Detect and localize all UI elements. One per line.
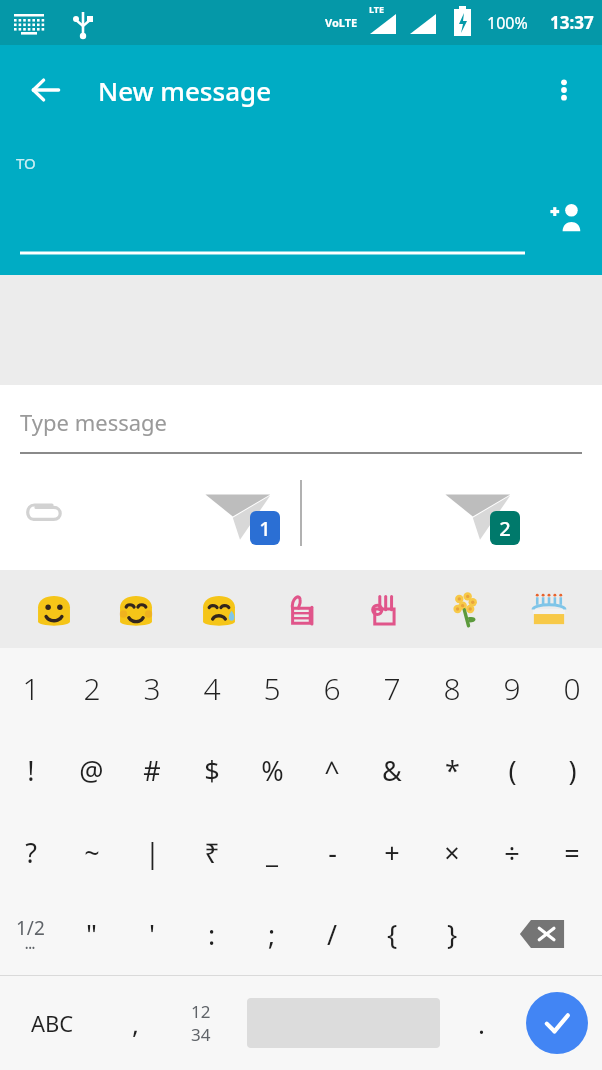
- button[interactable]: -: [302, 811, 362, 893]
- button[interactable]: ×: [422, 811, 482, 893]
- button[interactable]: 4: [182, 648, 242, 729]
- staticText: 1: [259, 515, 271, 542]
- staticText: 6: [323, 668, 341, 709]
- button[interactable]: $: [182, 729, 242, 811]
- staticText: •••: [25, 941, 36, 953]
- staticText: ~: [84, 834, 100, 871]
- button[interactable]: :: [182, 893, 242, 975]
- button[interactable]: Emoji 1: [25, 580, 83, 638]
- button[interactable]: ABC: [0, 976, 105, 1070]
- button[interactable]: ': [122, 893, 182, 975]
- button[interactable]: 5: [242, 648, 302, 729]
- button[interactable]: Send with SIM 2: [432, 473, 528, 553]
- button[interactable]: *: [422, 729, 482, 811]
- staticText: |: [145, 834, 160, 871]
- button[interactable]: Emoji 6: [437, 580, 495, 638]
- staticText: 8: [443, 668, 461, 709]
- button[interactable]: Send with SIM 1: [192, 473, 288, 553]
- staticText: ABC: [31, 1008, 74, 1038]
- button[interactable]: Back: [18, 62, 74, 118]
- staticText: VoLTE: [325, 15, 358, 30]
- button[interactable]: Emoji 2: [107, 580, 165, 638]
- button[interactable]: ": [61, 893, 122, 975]
- button[interactable]: 9: [482, 648, 542, 729]
- button[interactable]: Backspace: [482, 893, 602, 975]
- staticText: ': [149, 916, 156, 953]
- staticText: &: [382, 752, 402, 789]
- staticText: /: [327, 916, 338, 953]
- button[interactable]: ^: [302, 729, 362, 811]
- staticText: *: [445, 752, 460, 789]
- button[interactable]: Numbers: [165, 976, 237, 1070]
- button[interactable]: 1: [0, 648, 61, 729]
- button[interactable]: 3: [122, 648, 182, 729]
- staticText: 100%: [487, 12, 528, 34]
- button[interactable]: 8: [422, 648, 482, 729]
- button[interactable]: {: [362, 893, 422, 975]
- button[interactable]: =: [542, 811, 602, 893]
- button[interactable]: ,: [105, 976, 165, 1070]
- staticText: %: [261, 752, 284, 789]
- button[interactable]: ?: [0, 811, 61, 893]
- staticText: {: [387, 916, 398, 953]
- button[interactable]: 2: [61, 648, 122, 729]
- staticText: ;: [268, 916, 276, 953]
- button[interactable]: Emoji 3: [190, 580, 248, 638]
- staticText: ÷: [504, 834, 520, 871]
- button[interactable]: !: [0, 729, 61, 811]
- button[interactable]: 6: [302, 648, 362, 729]
- button[interactable]: .: [450, 976, 512, 1070]
- button[interactable]: Emoji 7: [520, 580, 578, 638]
- staticText: (: [508, 752, 517, 789]
- button[interactable]: Type message: [0, 385, 602, 455]
- button[interactable]: ₹: [182, 811, 242, 893]
- button[interactable]: &: [362, 729, 422, 811]
- button[interactable]: }: [422, 893, 482, 975]
- button[interactable]: 7: [362, 648, 422, 729]
- button[interactable]: 0: [542, 648, 602, 729]
- button[interactable]: |: [122, 811, 182, 893]
- button[interactable]: 1/2: [0, 893, 61, 975]
- staticText: $: [204, 752, 220, 789]
- staticText: ^: [324, 752, 340, 789]
- staticText: :: [208, 916, 216, 953]
- staticText: @: [79, 752, 104, 789]
- button[interactable]: @: [61, 729, 122, 811]
- staticText: 7: [383, 668, 401, 709]
- button[interactable]: [20, 219, 525, 253]
- button[interactable]: ÷: [482, 811, 542, 893]
- button[interactable]: #: [122, 729, 182, 811]
- staticText: 4: [203, 668, 221, 709]
- button[interactable]: %: [242, 729, 302, 811]
- staticText: 2: [83, 668, 101, 709]
- staticText: ×: [444, 834, 460, 871]
- button[interactable]: ;: [242, 893, 302, 975]
- staticText: }: [447, 916, 458, 953]
- button[interactable]: ): [542, 729, 602, 811]
- button[interactable]: /: [302, 893, 362, 975]
- button[interactable]: _: [242, 811, 302, 893]
- staticText: .: [478, 1006, 485, 1041]
- button[interactable]: Emoji 4: [272, 580, 330, 638]
- staticText: =: [564, 834, 580, 871]
- staticText: +: [384, 834, 400, 871]
- button[interactable]: Emoji 5: [355, 580, 413, 638]
- staticText: 3: [143, 668, 161, 709]
- button[interactable]: Attach: [8, 477, 80, 549]
- button[interactable]: (: [482, 729, 542, 811]
- button[interactable]: Enter: [512, 976, 602, 1070]
- button[interactable]: More options: [538, 64, 590, 116]
- staticText: TO: [16, 153, 36, 173]
- staticText: 1/2: [16, 915, 45, 941]
- staticText: ,: [132, 1006, 139, 1041]
- button[interactable]: ~: [61, 811, 122, 893]
- button[interactable]: +: [362, 811, 422, 893]
- staticText: ?: [25, 834, 37, 871]
- staticText: LTE: [369, 3, 385, 15]
- staticText: ₹: [204, 834, 220, 871]
- staticText: 1: [22, 668, 40, 709]
- staticText: 13:37: [550, 11, 594, 34]
- staticText: ): [568, 752, 577, 789]
- button[interactable]: Add contact: [540, 191, 592, 243]
